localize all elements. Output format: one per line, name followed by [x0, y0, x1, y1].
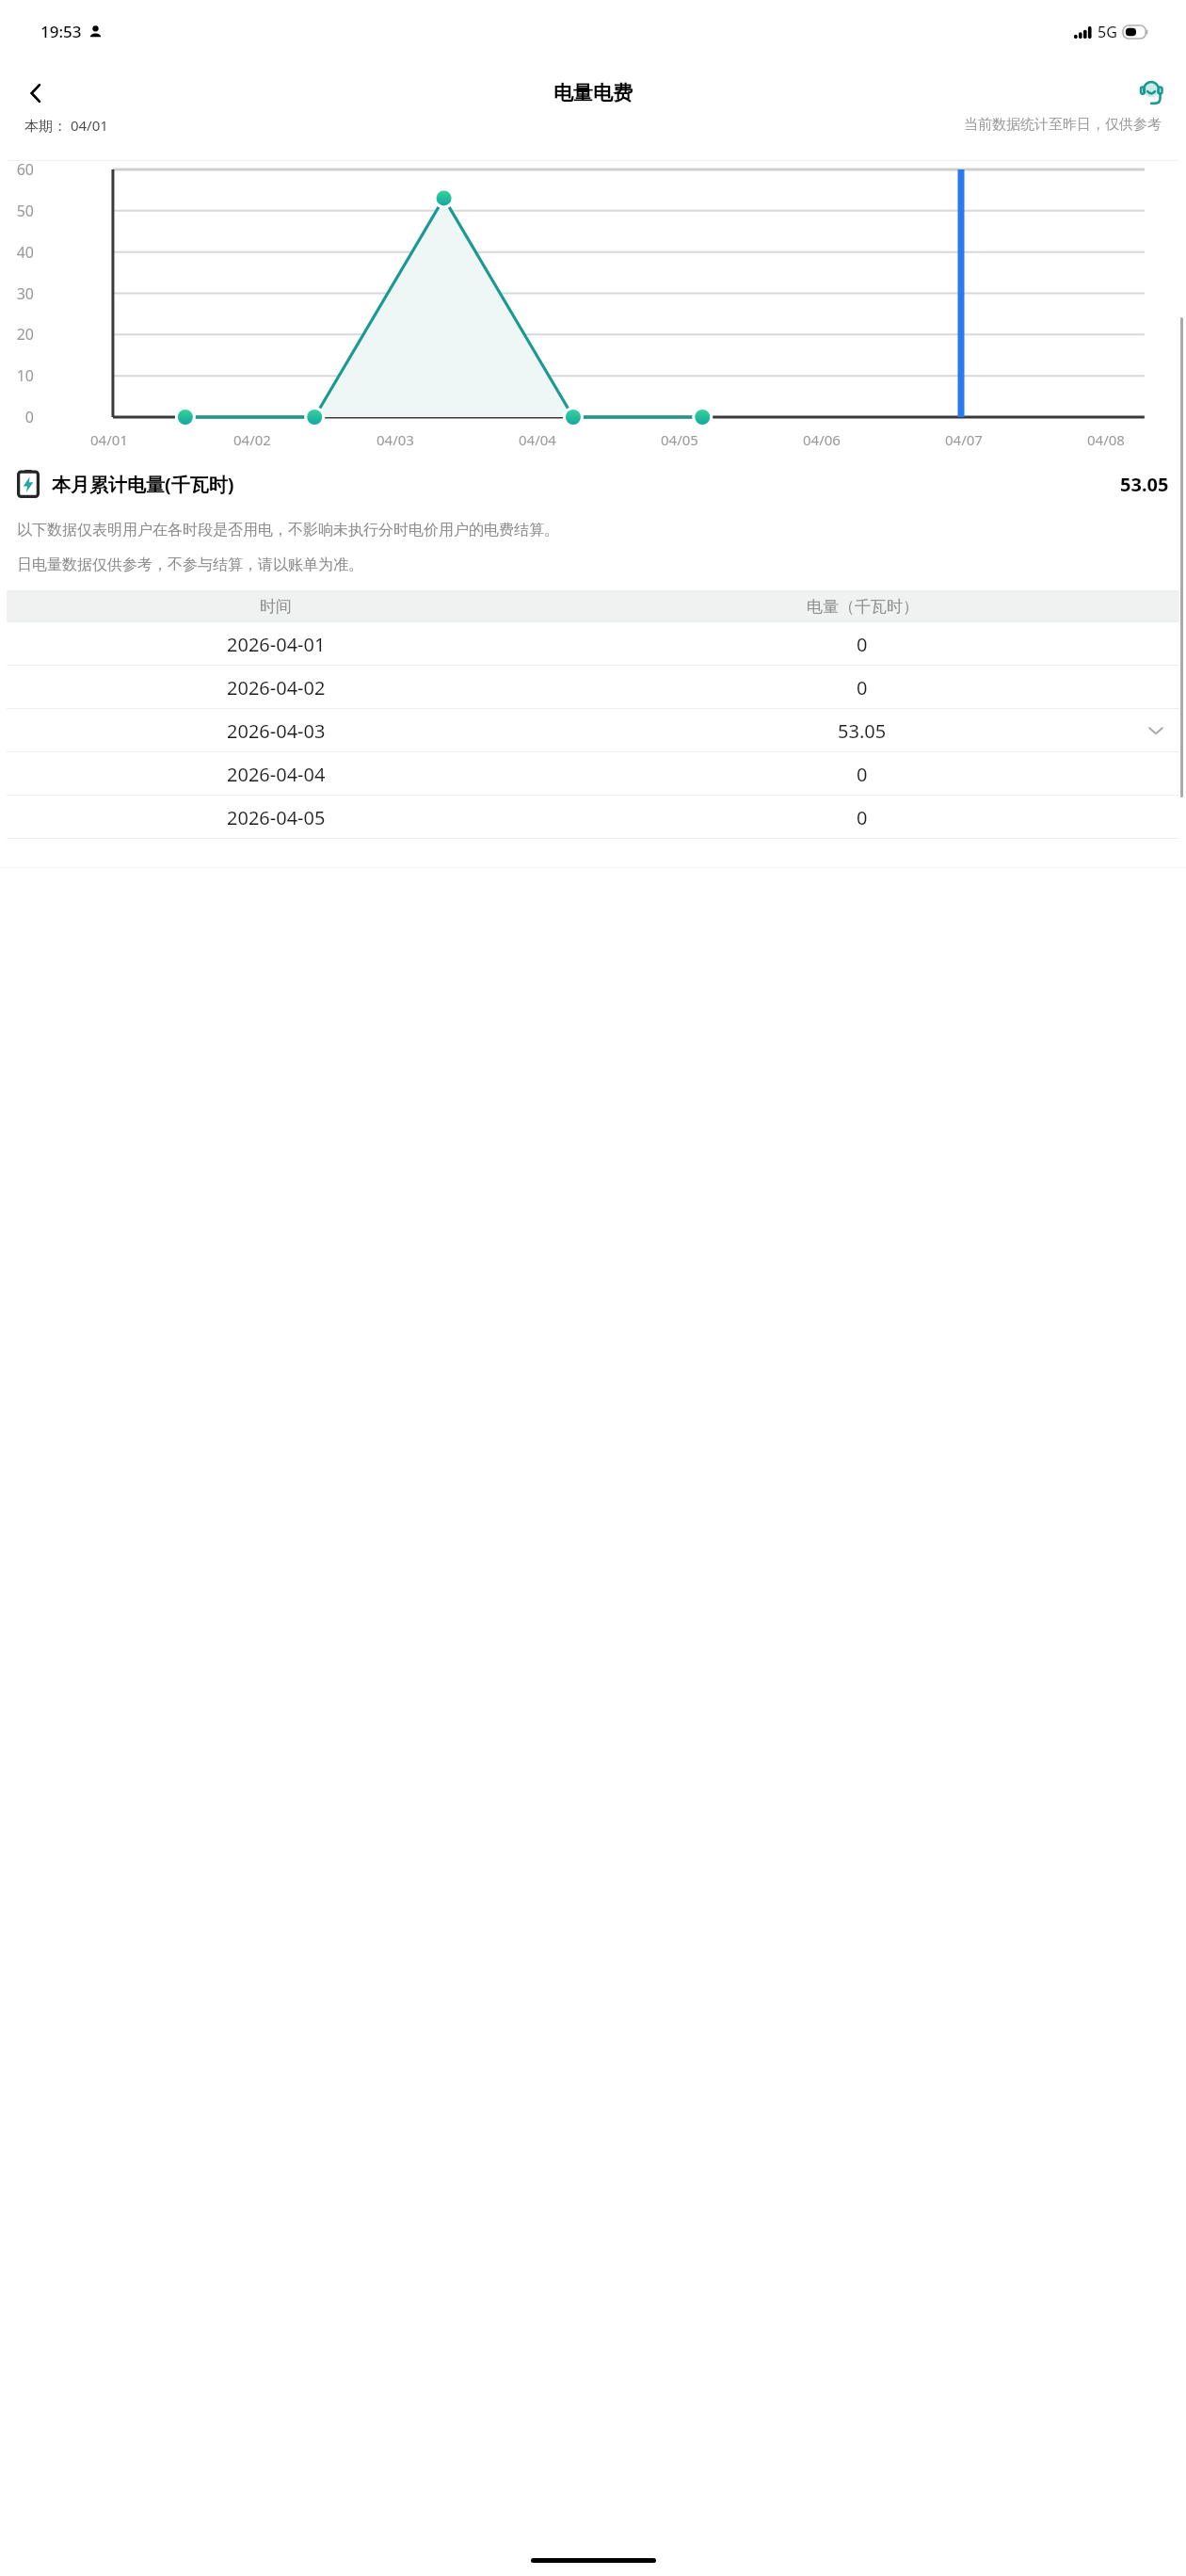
- staticText: 04/04: [519, 430, 556, 449]
- staticText: 本月累计电量(千瓦时): [52, 472, 234, 497]
- other: Expand: [1146, 721, 1165, 740]
- staticText: 2026-04-04: [227, 762, 326, 787]
- staticText: 40: [0, 242, 34, 263]
- staticText: 04/05: [661, 430, 698, 449]
- staticText: 53.05: [1120, 472, 1169, 497]
- button[interactable]: 2026-04-01: [0, 622, 1186, 666]
- button[interactable]: 2026-04-03: [0, 709, 1186, 752]
- staticText: 04/01: [90, 430, 128, 449]
- staticText: 50: [0, 201, 34, 221]
- staticText: 10: [0, 365, 34, 386]
- staticText: 20: [0, 324, 34, 345]
- staticText: 电量（千瓦时）: [807, 597, 919, 617]
- staticText: 电量电费: [553, 81, 633, 105]
- button[interactable]: 2026-04-02: [0, 666, 1186, 709]
- staticText: 53.05: [838, 718, 887, 744]
- staticText: 2026-04-03: [227, 718, 326, 744]
- staticText: 04/03: [377, 430, 414, 449]
- staticText: 以下数据仅表明用户在各时段是否用电，不影响未执行分时电价用户的电费结算。: [17, 521, 559, 539]
- staticText: 2026-04-05: [227, 805, 326, 830]
- staticText: 0: [857, 805, 868, 830]
- button[interactable]: Back: [13, 71, 58, 116]
- button[interactable]: Customer service: [1130, 71, 1175, 116]
- staticText: 日电量数据仅供参考，不参与结算，请以账单为准。: [17, 555, 363, 574]
- staticText: 30: [0, 283, 34, 304]
- staticText: 2026-04-01: [227, 632, 326, 657]
- staticText: 04/07: [945, 430, 983, 449]
- staticText: 时间: [260, 597, 292, 617]
- staticText: 60: [0, 159, 34, 180]
- staticText: 04/08: [1087, 430, 1125, 449]
- staticText: 0: [857, 762, 868, 787]
- staticText: 0: [857, 632, 868, 657]
- staticText: 0: [0, 407, 34, 427]
- staticText: 19:53: [40, 21, 82, 42]
- staticText: 本期： 04/01: [24, 116, 108, 135]
- staticText: 04/02: [233, 430, 271, 449]
- button[interactable]: 2026-04-05: [0, 796, 1186, 839]
- staticText: 0: [857, 675, 868, 700]
- staticText: 04/06: [803, 430, 841, 449]
- staticText: 5G: [1098, 22, 1117, 42]
- staticText: 当前数据统计至昨日，仅供参考: [964, 116, 1162, 134]
- staticText: 2026-04-02: [227, 675, 326, 700]
- button[interactable]: 2026-04-04: [0, 752, 1186, 796]
